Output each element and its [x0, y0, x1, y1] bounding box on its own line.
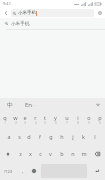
- button[interactable]: k: [78, 128, 89, 145]
- button[interactable]: 小米手机: [11, 9, 94, 17]
- staticText: 0: [99, 121, 101, 125]
- button[interactable]: w: [10, 111, 20, 128]
- staticText: ,: [22, 168, 24, 175]
- staticText: w: [13, 114, 18, 121]
- staticText: l: [94, 133, 96, 140]
- staticText: n: [71, 150, 75, 157]
- staticText: u: [65, 114, 69, 121]
- button[interactable]: 中: [0, 98, 20, 111]
- button[interactable]: 小米手机: [0, 18, 105, 29]
- button[interactable]: g: [45, 128, 56, 145]
- button[interactable]: m: [78, 145, 89, 162]
- staticText: i: [77, 114, 79, 121]
- button[interactable]: Enter: [88, 162, 105, 180]
- staticText: d: [27, 133, 31, 140]
- staticText: z: [19, 150, 22, 157]
- staticText: 8: [77, 121, 79, 125]
- staticText: r: [34, 114, 37, 121]
- button[interactable]: s: [14, 128, 24, 145]
- staticText: f: [39, 133, 41, 140]
- button[interactable]: o: [83, 111, 94, 128]
- button[interactable]: j: [67, 128, 78, 145]
- staticText: 中: [7, 101, 13, 109]
- button[interactable]: e: [20, 111, 30, 128]
- staticText: q: [3, 114, 7, 121]
- button[interactable]: Back: [0, 7, 11, 18]
- staticText: t: [44, 114, 46, 121]
- button[interactable]: v: [45, 145, 56, 162]
- button[interactable]: En: [20, 98, 42, 111]
- staticText: m: [81, 150, 87, 157]
- staticText: y: [54, 114, 57, 121]
- staticText: 6: [55, 121, 57, 125]
- button[interactable]: Shift: [0, 145, 15, 162]
- button[interactable]: h: [56, 128, 67, 145]
- staticText: En: [25, 101, 33, 109]
- staticText: j: [72, 133, 74, 140]
- staticText: h: [60, 133, 64, 140]
- button[interactable]: n: [67, 145, 78, 162]
- button[interactable]: l: [89, 128, 100, 145]
- button[interactable]: Change input language: [28, 162, 40, 180]
- staticText: o: [87, 114, 91, 121]
- staticText: s: [18, 133, 21, 140]
- staticText: p: [98, 114, 102, 121]
- button[interactable]: Hide keyboard: [91, 98, 105, 111]
- button[interactable]: r: [30, 111, 40, 128]
- staticText: 2: [15, 121, 17, 125]
- button[interactable]: q: [0, 111, 10, 128]
- staticText: k: [82, 133, 85, 140]
- button[interactable]: u: [61, 111, 72, 128]
- staticText: 4: [35, 121, 37, 125]
- button[interactable]: ?123: [0, 162, 17, 180]
- staticText: 7: [66, 121, 68, 125]
- staticText: a: [7, 133, 11, 140]
- button[interactable]: y: [50, 111, 61, 128]
- staticText: v: [49, 150, 52, 157]
- button[interactable]: z: [15, 145, 25, 162]
- staticText: c: [39, 150, 42, 157]
- button[interactable]: Settings: [94, 7, 105, 18]
- button[interactable]: c: [35, 145, 45, 162]
- staticText: 9:41: [3, 1, 11, 6]
- staticText: 1: [4, 121, 6, 125]
- staticText: 9: [88, 121, 90, 125]
- staticText: 5: [44, 121, 46, 125]
- staticText: 。: [33, 103, 37, 107]
- staticText: b: [60, 150, 64, 157]
- staticText: 小米手机: [18, 10, 36, 16]
- button[interactable]: b: [56, 145, 67, 162]
- staticText: 小米手机: [11, 21, 30, 27]
- staticText: ?123: [4, 169, 13, 174]
- button[interactable]: t: [40, 111, 50, 128]
- button[interactable]: f: [34, 128, 45, 145]
- button[interactable]: p: [94, 111, 105, 128]
- button[interactable]: a: [4, 128, 14, 145]
- staticText: 3: [24, 121, 26, 125]
- button[interactable]: ,: [17, 162, 28, 180]
- staticText: g: [49, 133, 53, 140]
- button[interactable]: i: [72, 111, 83, 128]
- staticText: e: [23, 114, 27, 121]
- button[interactable]: d: [24, 128, 34, 145]
- staticText: x: [29, 150, 32, 157]
- button[interactable]: Backspace: [89, 145, 105, 162]
- button[interactable]: x: [25, 145, 35, 162]
